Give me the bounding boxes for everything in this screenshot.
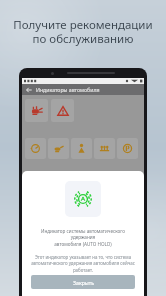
button[interactable]: Закрыть [31, 275, 135, 289]
staticText: Закрыть [73, 279, 94, 286]
staticText: Получите рекомендации по обслуживанию [13, 17, 153, 47]
button[interactable]: Назад [22, 84, 144, 95]
staticText: Индикатор системы автоматического удержа… [31, 228, 135, 247]
button[interactable]: Индикатор [51, 99, 74, 122]
staticText: Индикаторы автомобиля [36, 86, 100, 93]
button[interactable]: Индикатор [117, 138, 138, 159]
button[interactable]: Индикатор [25, 99, 48, 122]
button[interactable]: Индикатор [71, 138, 92, 159]
button[interactable]: Индикатор [25, 138, 46, 159]
button[interactable]: Индикатор [94, 138, 115, 159]
button[interactable]: Назад [22, 84, 36, 95]
staticText: Этот индикатор указывает на то, что сист… [31, 254, 135, 273]
button[interactable]: Индикатор [48, 138, 69, 159]
